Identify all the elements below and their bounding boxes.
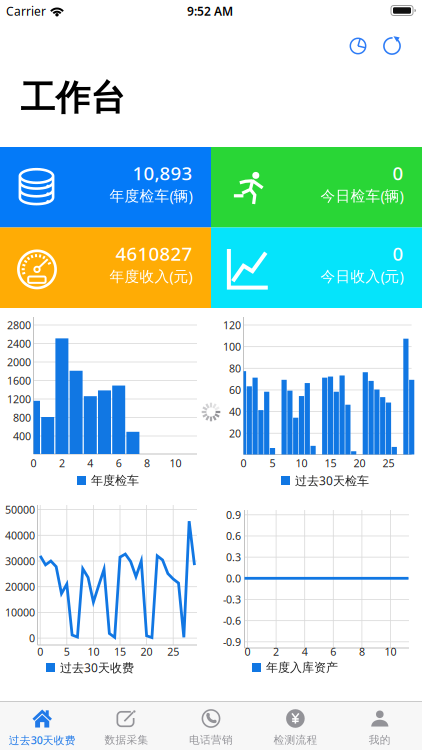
staticText: -0.3 (223, 592, 241, 607)
staticText: 检测流程 (273, 733, 317, 746)
staticText: 10 (169, 456, 181, 470)
staticText: 0 (37, 644, 43, 659)
staticText: -0.9 (223, 635, 241, 649)
button[interactable]: Statistics (344, 32, 372, 60)
staticText: 0 (240, 456, 246, 470)
staticText: 80 (229, 361, 241, 375)
staticText: 10,893 (132, 161, 192, 185)
staticText: 2000 (7, 355, 31, 369)
staticText: 40000 (5, 528, 35, 542)
staticText: 15 (324, 456, 336, 470)
staticText: 4 (302, 644, 308, 659)
staticText: 100 (223, 340, 241, 354)
staticText: 今日收入(元) (320, 266, 403, 286)
staticText: 6 (116, 456, 122, 470)
button[interactable]: 检测流程 (253, 702, 338, 750)
staticText: 10 (295, 456, 307, 470)
staticText: 年度检车(辆) (109, 186, 192, 205)
button[interactable]: 电话营销 (169, 702, 253, 750)
staticText: 20 (229, 426, 241, 440)
staticText: 10 (384, 644, 396, 659)
staticText: 今日检车(辆) (320, 186, 403, 205)
staticText: 60 (229, 383, 241, 397)
staticText: 年度入库资产 (266, 660, 338, 675)
button[interactable]: Refresh (377, 31, 407, 61)
staticText: 工作台 (20, 77, 125, 119)
button[interactable]: 过去30天收费 (0, 702, 84, 750)
staticText: 0.3 (226, 550, 241, 564)
staticText: 20000 (5, 580, 35, 594)
staticText: 20 (353, 456, 365, 470)
staticText: 10 (87, 644, 99, 659)
staticText: 120 (223, 318, 241, 332)
staticText: 40 (229, 404, 241, 419)
staticText: 4 (87, 456, 93, 470)
staticText: 2 (273, 644, 279, 659)
staticText: 0 (29, 631, 35, 645)
staticText: 25 (167, 644, 179, 659)
staticText: 数据采集 (105, 733, 149, 746)
staticText: 过去30天收费 (60, 659, 134, 675)
staticText: Carrier (6, 3, 46, 19)
staticText: 0.0 (226, 571, 241, 585)
staticText: 400 (13, 429, 31, 443)
staticText: 8 (359, 644, 365, 659)
staticText: 4610827 (115, 241, 192, 266)
staticText: 5 (269, 456, 275, 470)
staticText: 1600 (7, 373, 31, 388)
staticText: 15 (114, 644, 126, 659)
staticText: 过去30天收费 (9, 733, 76, 747)
staticText: 0 (244, 644, 250, 659)
staticText: 0.9 (226, 508, 241, 522)
staticText: 2400 (7, 336, 31, 351)
staticText: 9:52 AM (187, 3, 233, 19)
staticText: 20 (141, 644, 153, 659)
staticText: 2 (59, 456, 65, 470)
staticText: 25 (382, 456, 394, 470)
staticText: 0 (392, 161, 403, 185)
staticText: 50000 (5, 502, 35, 517)
button[interactable]: 我的 (338, 702, 422, 750)
staticText: 年度检车 (91, 473, 139, 488)
staticText: 电话营销 (189, 733, 233, 746)
staticText: 0 (392, 241, 403, 266)
button[interactable]: 数据采集 (84, 702, 169, 750)
staticText: -0.6 (223, 614, 241, 628)
staticText: 1200 (7, 392, 31, 406)
staticText: 6 (330, 644, 336, 659)
staticText: 800 (13, 410, 31, 425)
staticText: 0 (30, 456, 36, 470)
staticText: 8 (144, 456, 150, 470)
staticText: 0.6 (226, 529, 241, 543)
staticText: 年度收入(元) (109, 266, 192, 286)
staticText: 30000 (5, 554, 35, 568)
staticText: 我的 (369, 733, 391, 746)
staticText: 2800 (7, 318, 31, 332)
staticText: 10000 (5, 605, 35, 619)
staticText: 过去30天检车 (295, 472, 369, 488)
staticText: 5 (64, 644, 70, 659)
